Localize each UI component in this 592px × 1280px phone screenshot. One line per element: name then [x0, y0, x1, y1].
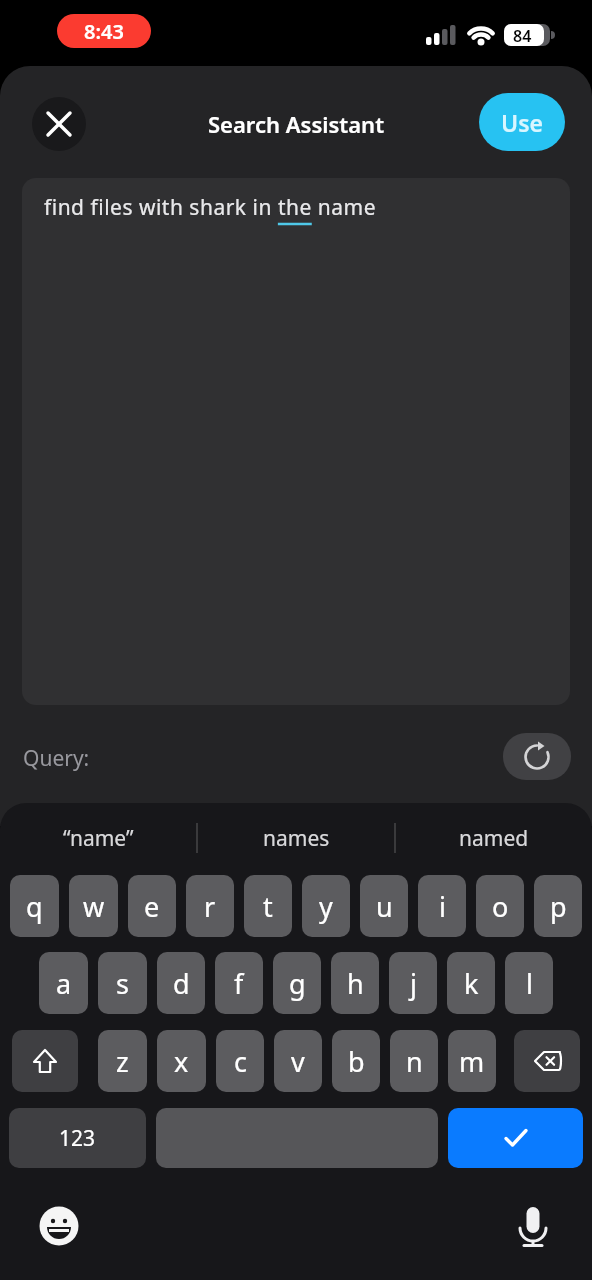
- staticText: n: [406, 1043, 423, 1080]
- button[interactable]: f: [215, 952, 263, 1014]
- button[interactable]: c: [216, 1030, 264, 1092]
- button[interactable]: d: [157, 952, 205, 1014]
- button[interactable]: w: [69, 875, 118, 937]
- button[interactable]: l: [505, 952, 553, 1014]
- button[interactable]: Use: [479, 93, 565, 151]
- button[interactable]: k: [447, 952, 495, 1014]
- button[interactable]: z: [98, 1030, 147, 1092]
- button[interactable]: [32, 97, 86, 151]
- staticText: Query:: [23, 744, 90, 773]
- staticText: j: [410, 965, 417, 1002]
- staticText: named: [459, 824, 529, 853]
- button[interactable]: “name”: [0, 813, 196, 863]
- staticText: q: [26, 888, 43, 925]
- staticText: “name”: [63, 824, 134, 853]
- staticText: u: [376, 888, 393, 925]
- staticText: 8:43: [84, 18, 124, 45]
- button[interactable]: b: [332, 1030, 380, 1092]
- button[interactable]: 123: [9, 1108, 146, 1168]
- button[interactable]: [12, 1030, 78, 1092]
- staticText: c: [234, 1043, 247, 1080]
- staticText: 123: [59, 1124, 96, 1153]
- button[interactable]: names: [198, 813, 394, 863]
- button[interactable]: t: [244, 875, 292, 937]
- staticText: w: [83, 888, 105, 925]
- staticText: e: [144, 888, 160, 925]
- staticText: t: [263, 888, 273, 925]
- button[interactable]: a: [39, 952, 88, 1014]
- button[interactable]: u: [360, 875, 408, 937]
- staticText: h: [347, 965, 364, 1002]
- button[interactable]: r: [186, 875, 234, 937]
- staticText: b: [348, 1043, 365, 1080]
- button[interactable]: y: [302, 875, 350, 937]
- staticText: Search Assistant: [208, 109, 385, 139]
- button[interactable]: h: [331, 952, 379, 1014]
- button[interactable]: p: [534, 875, 582, 937]
- button[interactable]: s: [98, 952, 147, 1014]
- button[interactable]: o: [476, 875, 524, 937]
- staticText: y: [319, 888, 333, 925]
- button[interactable]: [448, 1108, 583, 1168]
- staticText: names: [263, 824, 330, 853]
- button[interactable]: q: [10, 875, 59, 937]
- staticText: p: [550, 888, 567, 925]
- button[interactable]: n: [390, 1030, 438, 1092]
- staticText: r: [204, 888, 216, 925]
- staticText: d: [173, 965, 190, 1002]
- staticText: g: [289, 965, 306, 1002]
- staticText: Use: [501, 107, 543, 138]
- button[interactable]: 8:43: [57, 14, 151, 48]
- button[interactable]: j: [389, 952, 437, 1014]
- staticText: l: [526, 965, 533, 1002]
- button[interactable]: [38, 1205, 80, 1247]
- staticText: x: [174, 1043, 189, 1080]
- button[interactable]: named: [396, 813, 592, 863]
- staticText: o: [492, 888, 509, 925]
- staticText: i: [439, 888, 446, 925]
- staticText: 84: [513, 25, 532, 47]
- staticText: f: [234, 965, 244, 1002]
- staticText: k: [464, 965, 479, 1002]
- staticText: a: [56, 965, 72, 1002]
- button[interactable]: [512, 1205, 554, 1247]
- button[interactable]: [156, 1108, 438, 1168]
- button[interactable]: e: [128, 875, 176, 937]
- staticText: find files with shark in the name: [44, 193, 376, 222]
- button[interactable]: g: [273, 952, 321, 1014]
- staticText: z: [116, 1043, 129, 1080]
- button[interactable]: x: [157, 1030, 206, 1092]
- button[interactable]: m: [448, 1030, 496, 1092]
- button[interactable]: [503, 733, 571, 780]
- button[interactable]: i: [418, 875, 466, 937]
- button[interactable]: [514, 1030, 580, 1092]
- button[interactable]: v: [274, 1030, 322, 1092]
- staticText: v: [291, 1043, 305, 1080]
- staticText: s: [116, 965, 129, 1002]
- staticText: m: [459, 1043, 485, 1080]
